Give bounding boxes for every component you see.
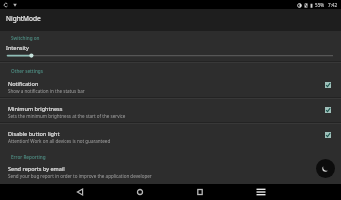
button[interactable]: Send reports by email — [0, 165, 341, 179]
button[interactable]: Home — [130, 184, 150, 200]
button[interactable]: Menu — [251, 184, 271, 200]
button[interactable]: Recents — [190, 184, 210, 200]
staticText: 7:42 — [328, 2, 338, 8]
staticText: NightMode — [6, 14, 41, 23]
staticText: 55% — [315, 2, 325, 8]
button[interactable]: Intensity slider — [0, 51, 341, 60]
staticText: Other settings — [11, 68, 43, 74]
staticText: Intensity — [6, 44, 29, 52]
button[interactable]: Minimum brightness — [0, 105, 341, 123]
staticText: Send reports by email — [8, 165, 65, 173]
button[interactable]: Notification — [325, 82, 331, 88]
staticText: Disable button light — [8, 130, 60, 138]
staticText: Minimum brightness — [8, 105, 63, 113]
staticText: Notification — [8, 80, 39, 88]
button[interactable]: Minimum brightness — [325, 107, 331, 113]
staticText: Show a notification in the status bar — [8, 88, 85, 94]
button[interactable]: Back — [70, 184, 90, 200]
staticText: Sets the minimum brightness at the start… — [8, 113, 126, 119]
button[interactable]: Disable button light — [0, 130, 341, 148]
staticText: Error Reporting — [11, 154, 46, 160]
button[interactable]: Notification — [0, 80, 341, 98]
staticText: Switching on — [11, 35, 40, 41]
staticText: Send your bug report in order to improve… — [8, 173, 152, 179]
staticText: Attention! Work on all devices is not gu… — [8, 138, 111, 144]
button[interactable]: Toggle night mode — [316, 159, 335, 178]
button[interactable]: Disable button light — [325, 132, 331, 138]
